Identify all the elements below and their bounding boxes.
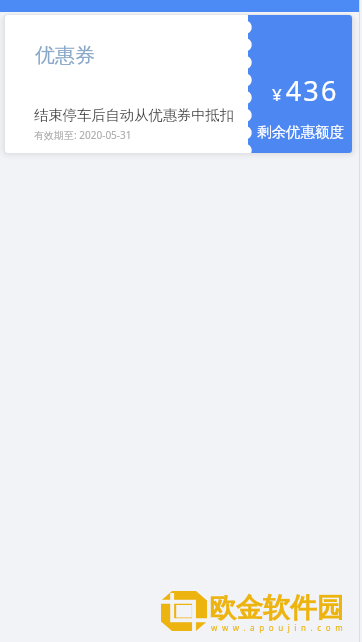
staticText: www.apoujin.com	[211, 622, 348, 633]
staticText: 有效期至: 2020-05-31	[34, 128, 132, 142]
staticText: 欧金软件园	[209, 591, 344, 625]
other: 欧金软件园 logo	[161, 591, 207, 631]
button[interactable]: 优惠券	[5, 15, 352, 153]
staticText: ¥436	[272, 72, 339, 109]
staticText: 结束停车后自动从优惠券中抵扣	[34, 106, 235, 124]
staticText: 优惠券	[35, 43, 95, 68]
staticText: 剩余优惠额度	[257, 123, 344, 141]
